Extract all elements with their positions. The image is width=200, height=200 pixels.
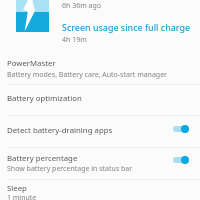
button[interactable] (0, 85, 200, 115)
staticText: Show battery percentage in status bar (7, 164, 133, 174)
staticText: 6h 36m ago (62, 1, 101, 11)
staticText: 1 minute (7, 193, 37, 200)
staticText: Sleep (7, 183, 27, 194)
staticText: PowerMaster (7, 58, 56, 69)
button[interactable] (0, 148, 200, 179)
button[interactable] (0, 116, 200, 147)
staticText: Battery optimization (7, 93, 82, 104)
staticText: Detect battery-draining apps (7, 125, 113, 136)
button[interactable] (0, 56, 200, 84)
staticText: Battery percentage (7, 153, 78, 164)
button[interactable]: Toggle (173, 124, 191, 134)
button[interactable]: Toggle (173, 155, 191, 165)
button[interactable] (0, 180, 200, 200)
staticText: Screen usage since full charge (62, 21, 191, 33)
staticText: 4h 19m (62, 35, 87, 45)
staticText: Battery modes, Battery care, Auto-start … (7, 70, 168, 80)
